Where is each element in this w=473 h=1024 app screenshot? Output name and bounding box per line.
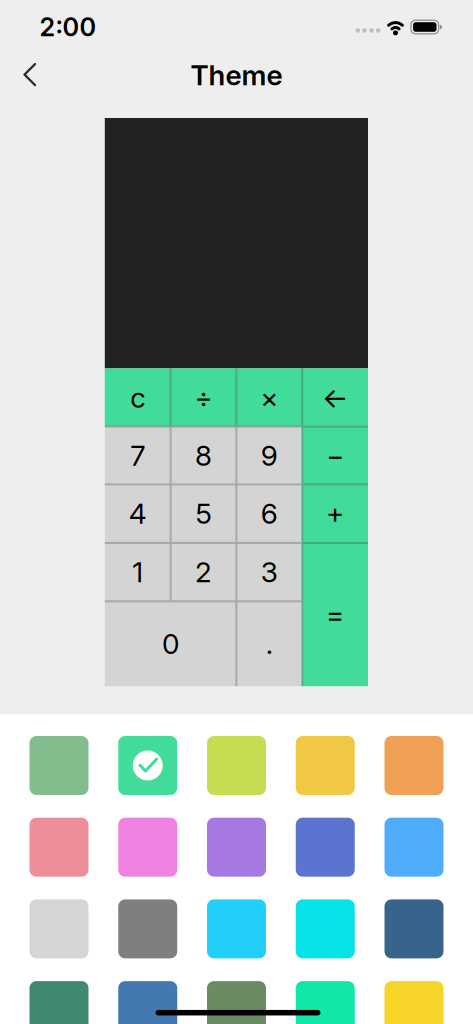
staticText: 4 [129, 497, 147, 530]
staticText: ← [322, 381, 348, 414]
staticText: Theme [190, 58, 282, 91]
staticText: + [326, 497, 344, 530]
button[interactable]: Theme colour 12 [118, 899, 177, 958]
staticText: = [326, 598, 344, 631]
button[interactable]: Theme colour 19 [296, 981, 355, 1024]
button[interactable]: Theme colour 8 [207, 818, 266, 877]
button[interactable]: Theme colour 16 [29, 981, 88, 1024]
button[interactable]: Theme colour 13 [207, 899, 266, 958]
button[interactable]: Theme colour 17 [118, 981, 177, 1024]
button[interactable]: Theme colour 15 [384, 899, 443, 958]
staticText: 2 [195, 556, 212, 589]
staticText: 1 [132, 556, 143, 589]
button[interactable]: Theme colour 14 [296, 899, 355, 958]
button[interactable]: Theme colour 1 [29, 736, 88, 795]
button[interactable]: Theme colour 7 [118, 818, 177, 877]
button[interactable]: Theme colour 9 [296, 818, 355, 877]
staticText: 0 [162, 627, 179, 660]
staticText: ÷ [194, 381, 212, 414]
button[interactable]: Theme colour 20 [384, 981, 443, 1024]
button[interactable]: Theme colour 18 [207, 981, 266, 1024]
staticText: . [266, 627, 273, 660]
staticText: 8 [195, 439, 212, 472]
staticText: − [326, 439, 344, 472]
staticText: 6 [261, 497, 278, 530]
button[interactable]: Theme colour 5 [384, 736, 443, 795]
staticText: × [260, 381, 278, 414]
button[interactable]: Theme colour 2 [118, 736, 177, 795]
staticText: 7 [130, 439, 145, 472]
button[interactable]: Theme colour 10 [384, 818, 443, 877]
staticText: 3 [261, 556, 278, 589]
button[interactable]: Back [7, 59, 51, 90]
button[interactable]: Theme colour 4 [296, 736, 355, 795]
staticText: 5 [195, 497, 211, 530]
button[interactable]: Theme colour 6 [29, 818, 88, 877]
staticText: 9 [261, 439, 278, 472]
staticText: 2:00 [39, 12, 96, 42]
button[interactable]: Theme colour 3 [207, 736, 266, 795]
button[interactable]: Theme colour 11 [29, 899, 88, 958]
staticText: c [130, 381, 145, 414]
